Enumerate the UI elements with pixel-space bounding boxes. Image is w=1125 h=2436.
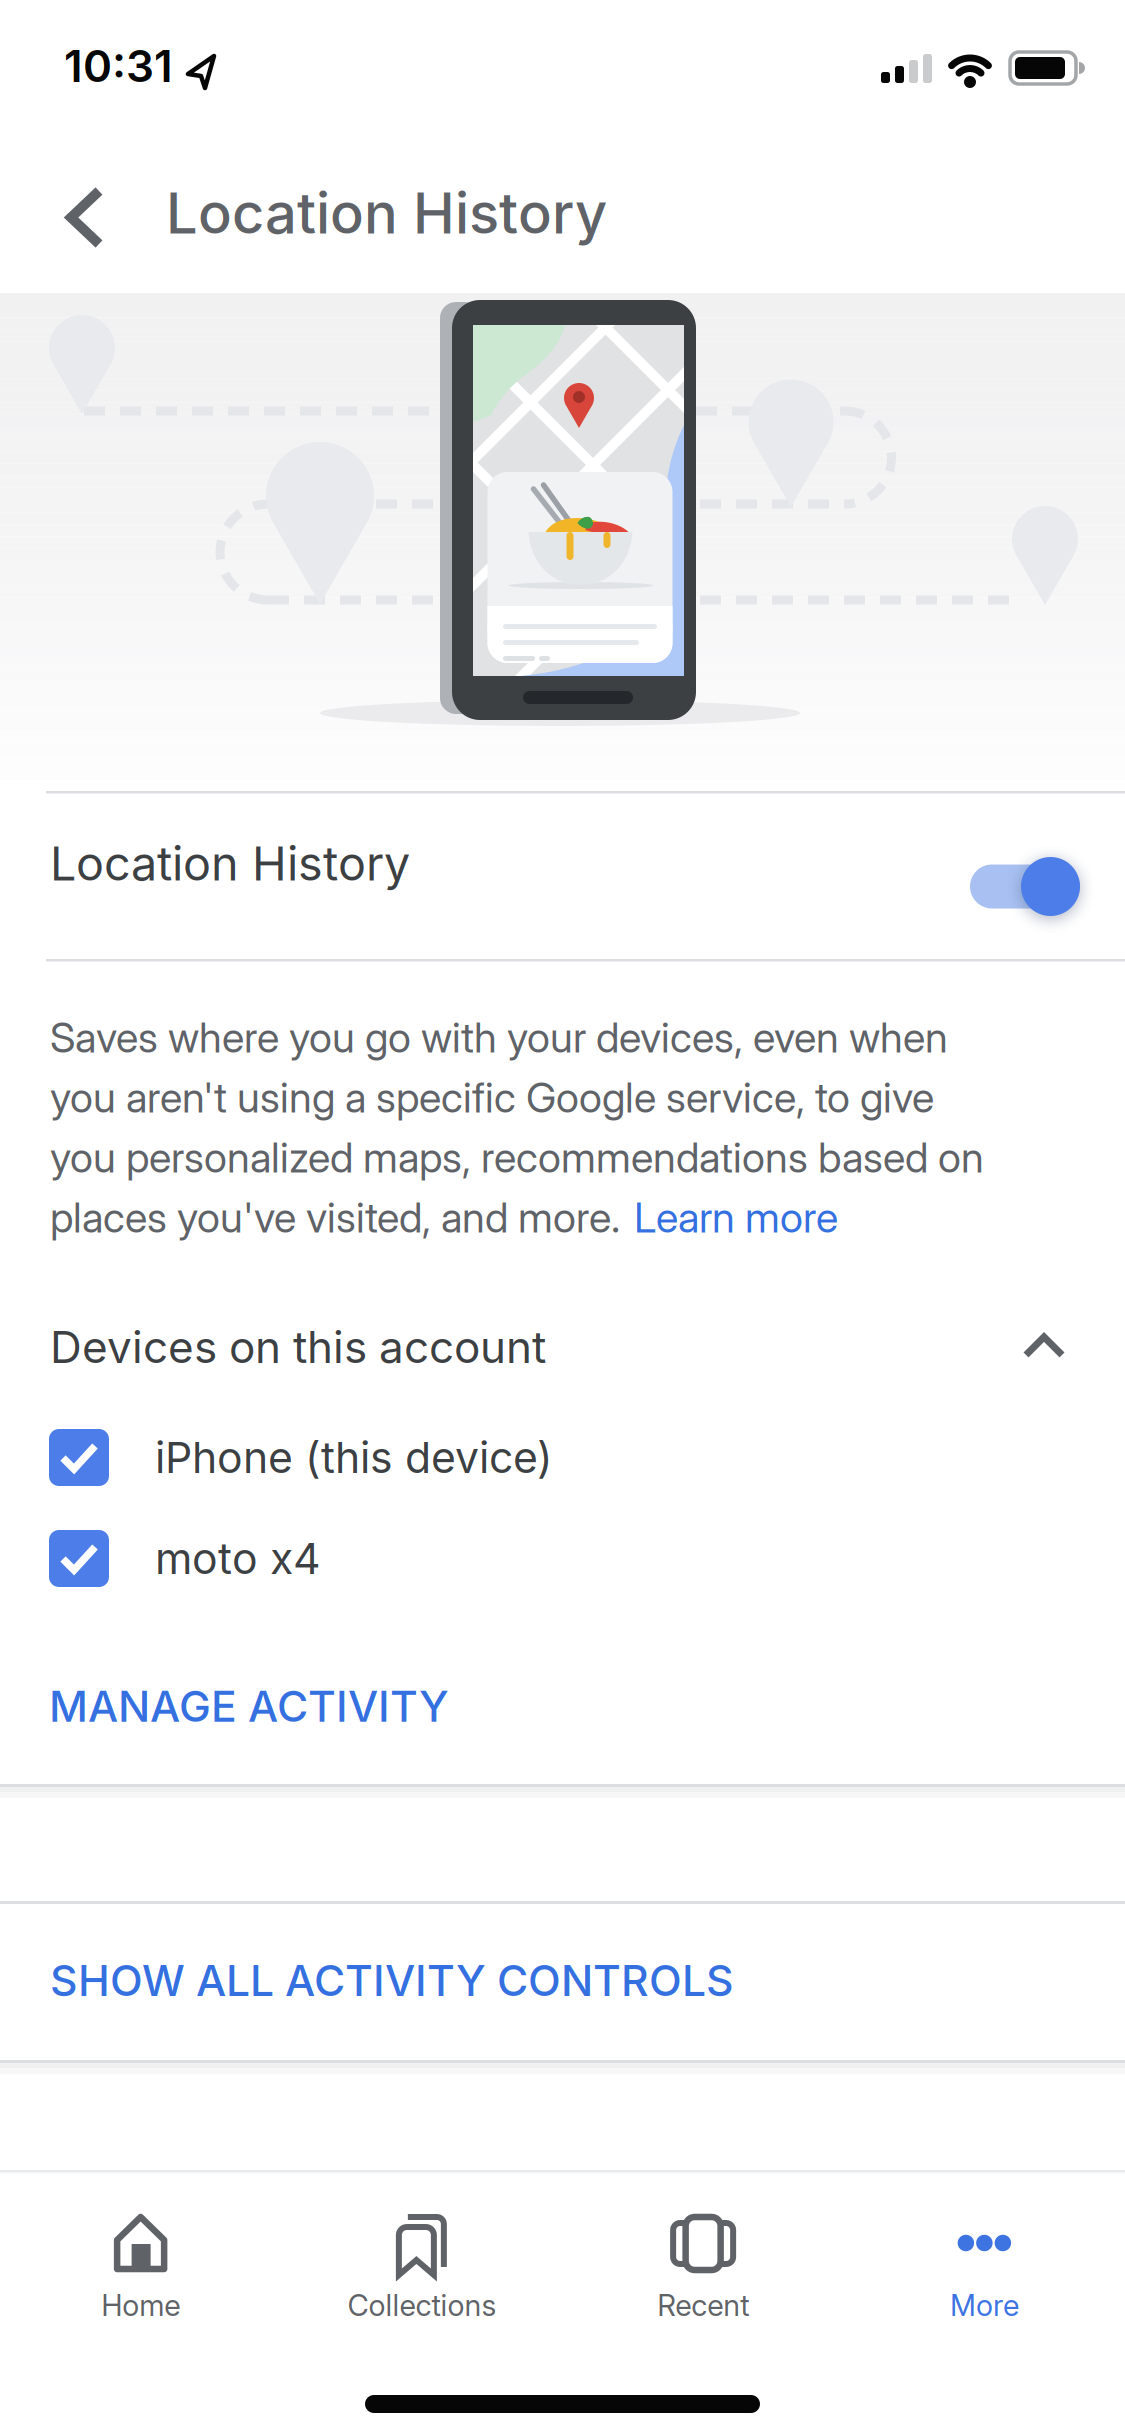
staticText: Devices on this account — [50, 1321, 546, 1373]
button[interactable]: Devices on this account — [50, 1321, 1062, 1373]
staticText: Location History — [50, 836, 410, 891]
staticText: iPhone (this device) — [155, 1432, 553, 1483]
button[interactable]: More — [844, 2214, 1125, 2323]
button[interactable]: Learn more — [634, 1193, 838, 1242]
button[interactable]: moto x4 — [49, 1530, 321, 1587]
staticText: Recent — [657, 2288, 749, 2323]
staticText: Saves where you go with your devices, ev… — [50, 1013, 948, 1062]
button[interactable]: SHOW ALL ACTIVITY CONTROLS — [0, 1904, 1125, 2057]
button[interactable]: MANAGE ACTIVITY — [49, 1681, 449, 1731]
staticText: places you've visited, and more. — [50, 1193, 620, 1242]
staticText: Learn more — [634, 1193, 838, 1242]
button[interactable]: Back — [0, 0, 110, 110]
button[interactable]: Recent — [562, 2214, 844, 2323]
staticText: SHOW ALL ACTIVITY CONTROLS — [50, 1955, 734, 2006]
staticText: More — [950, 2288, 1019, 2323]
staticText: moto x4 — [155, 1533, 321, 1584]
staticText: Home — [101, 2288, 180, 2323]
button[interactable]: iPhone (this device) — [49, 1429, 553, 1486]
button[interactable]: Collections — [281, 2214, 562, 2323]
staticText: Collections — [347, 2288, 496, 2323]
staticText: you aren't using a specific Google servi… — [50, 1073, 934, 1122]
button[interactable]: Location History — [969, 830, 1081, 916]
staticText: Location History — [166, 180, 607, 246]
staticText: you personalized maps, recommendations b… — [50, 1133, 984, 1182]
staticText: 10:31 — [64, 40, 173, 92]
staticText: MANAGE ACTIVITY — [49, 1681, 449, 1731]
button[interactable]: Home — [0, 2214, 281, 2323]
